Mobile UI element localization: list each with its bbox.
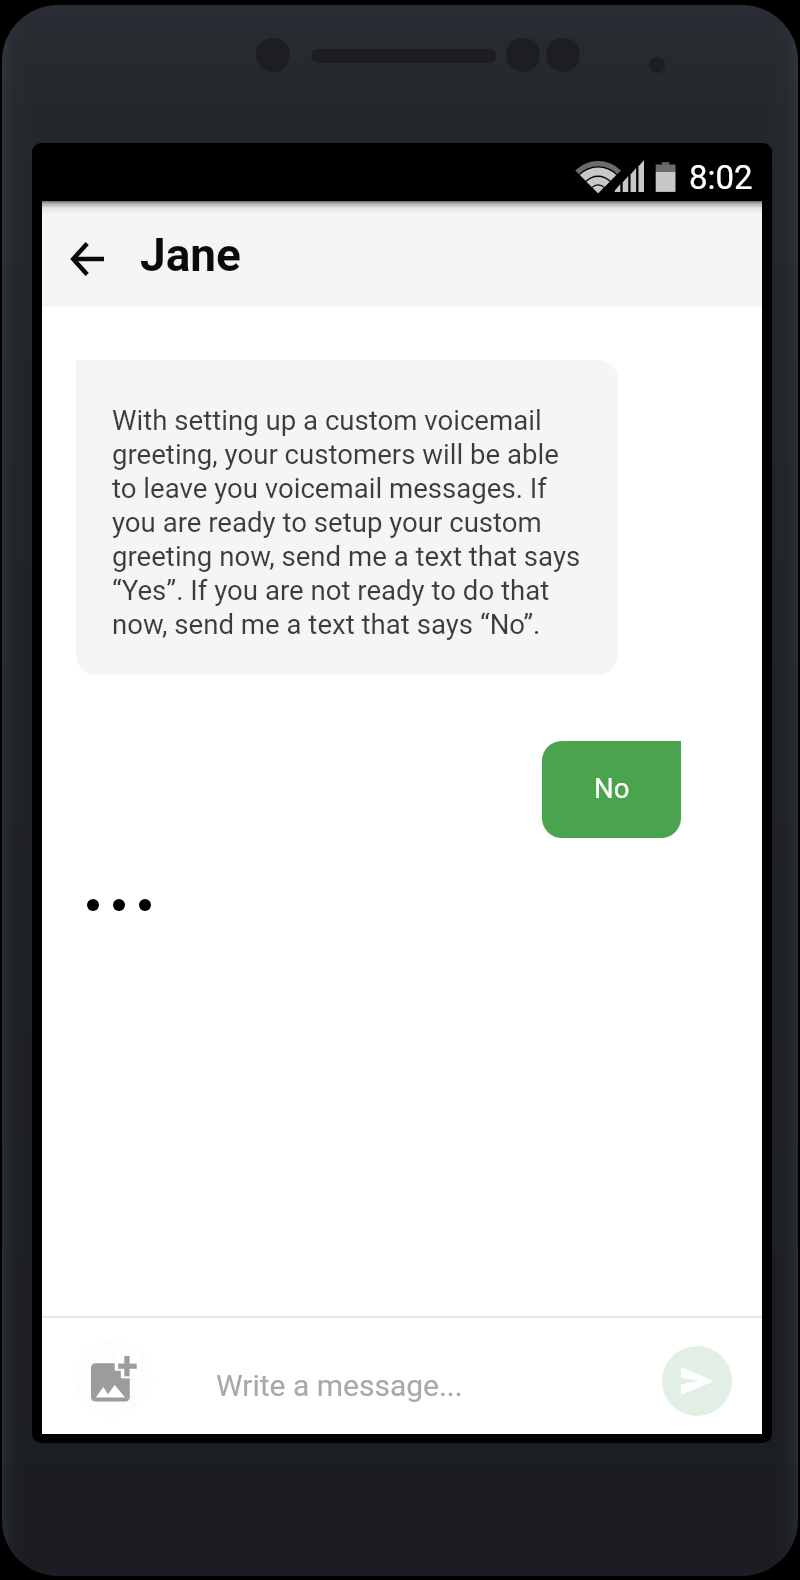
- button[interactable]: No: [542, 741, 681, 838]
- button[interactable]: Send: [662, 1346, 732, 1416]
- staticText: No: [594, 772, 630, 804]
- button[interactable]: With setting up a custom voicemail greet…: [76, 360, 618, 675]
- staticText: 8:02: [689, 158, 753, 197]
- staticText: With setting up a custom voicemail greet…: [112, 404, 585, 641]
- button[interactable]: Add image: [74, 1339, 153, 1418]
- staticText: Jane: [140, 228, 241, 282]
- staticText: Write a message...: [216, 1368, 463, 1403]
- button[interactable]: Back: [56, 228, 118, 290]
